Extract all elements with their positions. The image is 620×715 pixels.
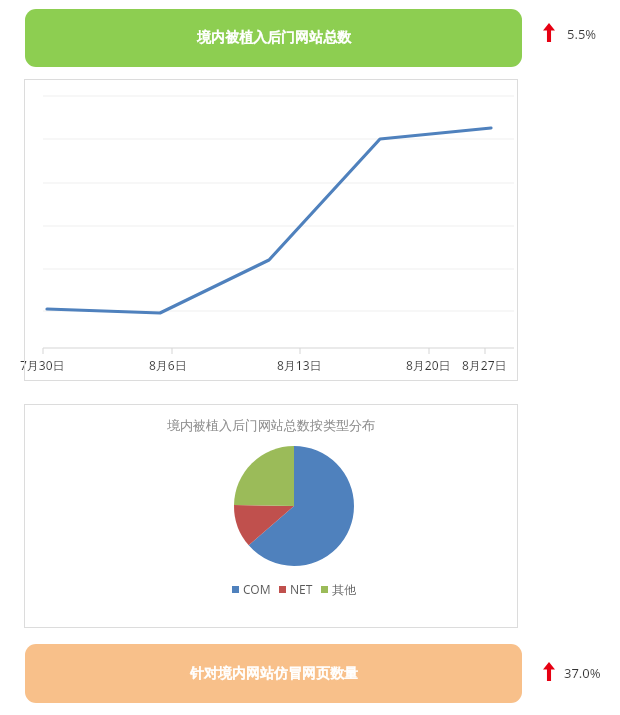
button[interactable]: Increase xyxy=(543,23,555,42)
staticText: 其他 xyxy=(332,582,356,597)
button[interactable]: Increase xyxy=(543,662,555,681)
staticText: 8月27日 xyxy=(462,357,507,373)
button[interactable]: COM xyxy=(232,581,271,597)
button[interactable]: 针对境内网站仿冒网页数量 xyxy=(25,644,522,703)
staticText: 8月13日 xyxy=(277,357,322,373)
staticText: 5.5% xyxy=(567,25,597,43)
button[interactable]: 7月30日 xyxy=(24,79,518,381)
button[interactable]: NET xyxy=(279,581,313,597)
staticText: 境内被植入后门网站总数按类型分布 xyxy=(167,417,375,433)
staticText: 7月30日 xyxy=(20,357,65,373)
button[interactable]: 境内被植入后门网站总数 xyxy=(25,9,522,67)
button[interactable]: 其他 xyxy=(321,582,356,597)
staticText: 境内被植入后门网站总数 xyxy=(197,29,351,47)
staticText: NET xyxy=(290,581,313,597)
staticText: 针对境内网站仿冒网页数量 xyxy=(190,665,358,683)
staticText: 8月6日 xyxy=(149,357,187,373)
staticText: 8月20日 xyxy=(406,357,451,373)
button[interactable]: 境内被植入后门网站总数按类型分布 xyxy=(24,404,518,628)
staticText: 37.0% xyxy=(564,664,601,682)
staticText: COM xyxy=(243,581,271,597)
